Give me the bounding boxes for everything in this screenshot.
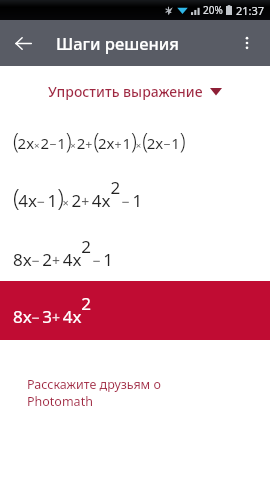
button[interactable]: (4x−1)×2+4x2−1	[13, 176, 143, 213]
staticText: Упростить выражение	[48, 82, 203, 101]
staticText: 21:37	[236, 3, 265, 18]
button[interactable]: (2x×2−1)×2+(2x+1)×(2x−1)	[13, 126, 185, 155]
button[interactable]: Back	[0, 20, 46, 66]
staticText: Шаги решения	[56, 32, 180, 54]
button[interactable]	[0, 281, 270, 340]
staticText: Расскажите друзьям о Photomath	[27, 376, 161, 409]
button[interactable]: More options	[224, 20, 270, 66]
button[interactable]: 8x−2+4x2−1	[13, 235, 114, 271]
button[interactable]: Упростить выражение	[0, 66, 270, 116]
staticText: 20%	[203, 3, 223, 17]
button[interactable]: Расскажите друзьям о Photomath	[0, 376, 270, 409]
button[interactable]: 8x−3+4x2	[13, 292, 93, 328]
